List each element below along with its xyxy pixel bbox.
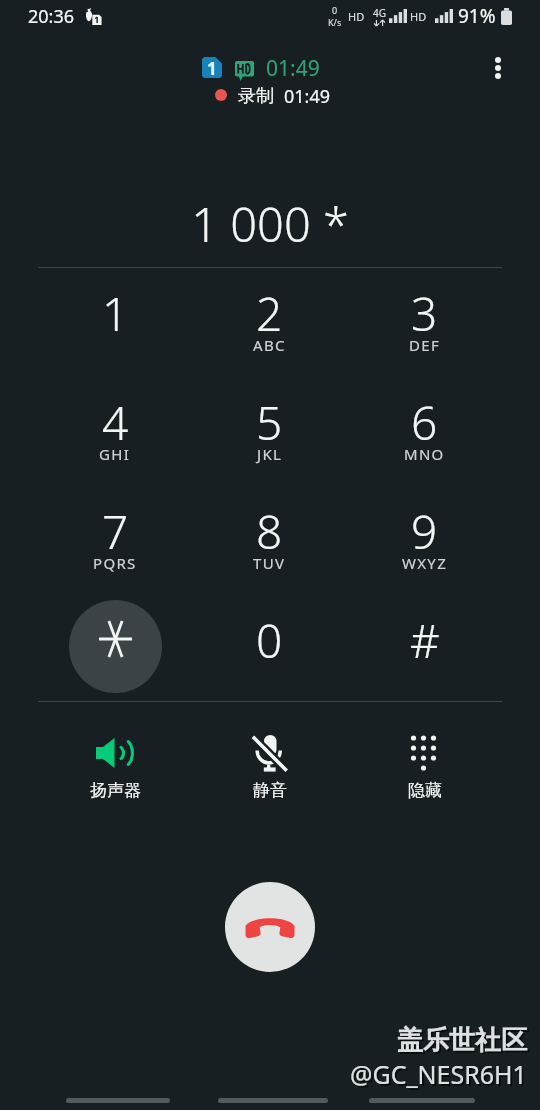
staticText: # <box>410 609 440 672</box>
staticText: 1 <box>102 282 129 345</box>
staticText: DEF <box>409 335 440 355</box>
staticText: 8 <box>256 500 283 563</box>
staticText: 0 <box>332 4 338 16</box>
button[interactable] <box>38 609 192 718</box>
staticText: 0 <box>256 609 283 672</box>
staticText: 91% <box>458 3 496 29</box>
button[interactable]: 6 <box>347 391 502 500</box>
button[interactable]: 隐藏 <box>347 722 502 812</box>
staticText: ABC <box>253 335 286 355</box>
staticText: 隐藏 <box>408 780 442 801</box>
staticText: 20:36 <box>28 4 75 29</box>
staticText: HD <box>348 9 365 24</box>
staticText: 01:49 <box>266 54 320 83</box>
staticText: 盖乐世社区 <box>397 1024 527 1057</box>
button[interactable]: 2 <box>192 282 347 391</box>
button[interactable]: End call <box>225 882 315 972</box>
staticText: K/s <box>328 16 342 28</box>
button[interactable]: 5 <box>192 391 347 500</box>
staticText: MNO <box>404 444 445 464</box>
button[interactable]: 1 <box>38 282 192 391</box>
staticText: 4 <box>102 391 129 454</box>
staticText: TUV <box>253 553 286 573</box>
staticText: 01:49 <box>284 84 331 109</box>
button[interactable]: 扬声器 <box>38 722 192 812</box>
staticText: 4G <box>373 6 386 20</box>
button[interactable]: More options <box>480 50 516 86</box>
staticText: 2 <box>256 282 283 345</box>
staticText: 盖乐世社区 <box>399 1026 529 1059</box>
button[interactable]: # <box>347 609 502 718</box>
button[interactable]: 3 <box>347 282 502 391</box>
staticText: @GC_NESR6H1 <box>350 1057 527 1091</box>
staticText: 7 <box>102 500 129 563</box>
staticText: WXYZ <box>402 553 448 573</box>
staticText: HD <box>410 9 427 24</box>
staticText: 录制 <box>238 85 274 108</box>
staticText: GHI <box>99 444 131 464</box>
staticText: 5 <box>256 391 283 454</box>
button[interactable]: 静音 <box>192 722 347 812</box>
button[interactable]: 4 <box>38 391 192 500</box>
button[interactable]: 7 <box>38 500 192 609</box>
button[interactable]: 0 <box>192 609 347 718</box>
staticText: 3 <box>411 282 438 345</box>
staticText: 6 <box>411 391 438 454</box>
staticText: 静音 <box>253 780 287 801</box>
button[interactable]: 8 <box>192 500 347 609</box>
staticText: 1 <box>207 57 217 78</box>
staticText: 1 000 * <box>191 192 349 256</box>
staticText: 扬声器 <box>90 780 141 801</box>
staticText: 9 <box>411 500 438 563</box>
staticText: JKL <box>257 444 283 464</box>
button[interactable]: 9 <box>347 500 502 609</box>
staticText: @GC_NESR6H1 <box>352 1059 529 1093</box>
staticText: PQRS <box>93 553 137 573</box>
